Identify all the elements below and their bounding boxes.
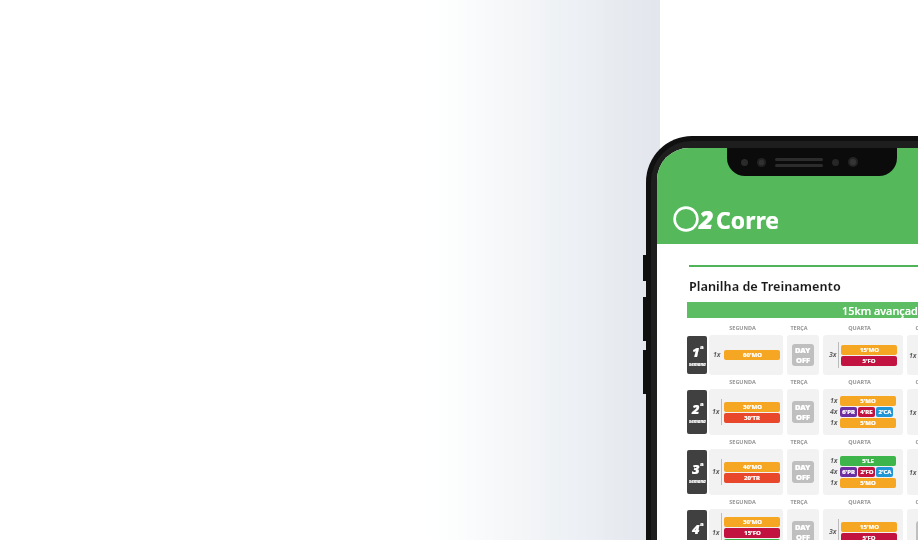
- staticText: 1x: [830, 478, 838, 488]
- button[interactable]: DAY: [787, 335, 819, 375]
- staticText: QUIN: [915, 378, 918, 385]
- staticText: 5'MO: [860, 397, 876, 405]
- staticText: 5'FO: [862, 357, 876, 365]
- button[interactable]: 1x: [907, 335, 918, 375]
- staticText: SEGUNDA: [729, 438, 756, 445]
- staticText: 60'MO: [743, 351, 762, 359]
- staticText: 2'CA: [878, 408, 892, 416]
- button[interactable]: 1x: [907, 389, 918, 435]
- staticText: DAY: [795, 462, 811, 472]
- staticText: 4'RE: [860, 408, 873, 416]
- staticText: QUIN: [915, 498, 918, 505]
- button[interactable]: DAY: [907, 509, 918, 540]
- staticText: 15km avançado: [842, 303, 918, 318]
- staticText: 1x: [830, 396, 838, 406]
- staticText: 1x: [909, 468, 917, 478]
- staticText: OFF: [796, 532, 811, 540]
- staticText: 5'MO: [860, 419, 876, 427]
- staticText: 4x: [830, 467, 838, 477]
- staticText: 3x: [829, 350, 837, 360]
- staticText: 1: [692, 343, 700, 361]
- button[interactable]: DAY: [787, 509, 819, 540]
- staticText: 4x: [830, 407, 838, 417]
- staticText: 1x: [830, 456, 838, 466]
- staticText: a: [700, 343, 704, 351]
- staticText: 1x: [712, 467, 720, 477]
- button[interactable]: 1x: [709, 509, 783, 540]
- staticText: OFF: [796, 412, 811, 422]
- staticText: TERÇA: [790, 324, 808, 331]
- staticText: QUARTA: [848, 324, 871, 331]
- staticText: 5'MO: [860, 479, 876, 487]
- button[interactable]: 15km avançado: [687, 302, 918, 318]
- staticText: 40'MO: [743, 463, 762, 471]
- staticText: 2'FO: [860, 468, 874, 476]
- button[interactable]: 1x: [709, 449, 783, 495]
- staticText: 1x: [713, 350, 721, 360]
- staticText: 20'TR: [744, 474, 760, 482]
- button[interactable]: 2: [687, 390, 707, 434]
- staticText: QUIN: [915, 324, 918, 331]
- button[interactable]: 3: [687, 450, 707, 494]
- staticText: a: [700, 400, 704, 408]
- staticText: SEGUNDA: [729, 378, 756, 385]
- staticText: DAY: [795, 402, 811, 412]
- staticText: QUARTA: [848, 438, 871, 445]
- button[interactable]: 4: [687, 510, 707, 540]
- staticText: SEGUNDA: [729, 324, 756, 331]
- staticText: 2'CA: [878, 468, 892, 476]
- staticText: 15'FO: [744, 529, 761, 537]
- staticText: DAY: [795, 522, 811, 532]
- staticText: QUARTA: [848, 378, 871, 385]
- button[interactable]: 1x: [709, 389, 783, 435]
- button[interactable]: 1: [687, 336, 707, 374]
- staticText: TERÇA: [790, 438, 808, 445]
- staticText: 5'LE: [862, 457, 874, 465]
- staticText: 15'MO: [860, 523, 879, 531]
- staticText: 30'MO: [743, 518, 762, 526]
- button[interactable]: 2: [673, 202, 779, 236]
- staticText: DAY: [795, 345, 811, 355]
- staticText: OFF: [796, 355, 811, 365]
- button[interactable]: 1x: [823, 449, 903, 495]
- staticText: SEGUNDA: [729, 498, 756, 505]
- staticText: 4: [692, 520, 700, 538]
- staticText: Corre: [716, 204, 779, 235]
- staticText: Planilha de Treinamento: [689, 278, 841, 295]
- staticText: 1x: [909, 351, 917, 361]
- staticText: 15'MO: [860, 346, 879, 354]
- staticText: 2: [699, 202, 714, 236]
- staticText: 1x: [712, 407, 720, 417]
- staticText: semana: [689, 418, 706, 424]
- staticText: QUIN: [915, 438, 918, 445]
- staticText: a: [700, 520, 704, 528]
- staticText: 3: [692, 460, 700, 478]
- staticText: 5'FO: [862, 534, 876, 540]
- staticText: TERÇA: [790, 378, 808, 385]
- button[interactable]: 1x: [907, 449, 918, 495]
- button[interactable]: DAY: [787, 389, 819, 435]
- staticText: 3x: [829, 527, 837, 537]
- staticText: 30'MO: [743, 403, 762, 411]
- staticText: 6'PR: [842, 408, 855, 416]
- staticText: 1x: [909, 408, 917, 418]
- staticText: 30'TR: [744, 414, 760, 422]
- button[interactable]: 3x: [823, 509, 903, 540]
- staticText: 6'PR: [842, 468, 855, 476]
- staticText: semana: [689, 361, 706, 367]
- staticText: 2: [692, 400, 700, 418]
- button[interactable]: 3x: [823, 335, 903, 375]
- staticText: QUARTA: [848, 498, 871, 505]
- staticText: semana: [689, 478, 706, 484]
- button[interactable]: 1x: [823, 389, 903, 435]
- staticText: a: [700, 460, 704, 468]
- staticText: 1x: [712, 528, 720, 538]
- button[interactable]: DAY: [787, 449, 819, 495]
- staticText: OFF: [796, 472, 811, 482]
- staticText: TERÇA: [790, 498, 808, 505]
- button[interactable]: 1x: [709, 335, 783, 375]
